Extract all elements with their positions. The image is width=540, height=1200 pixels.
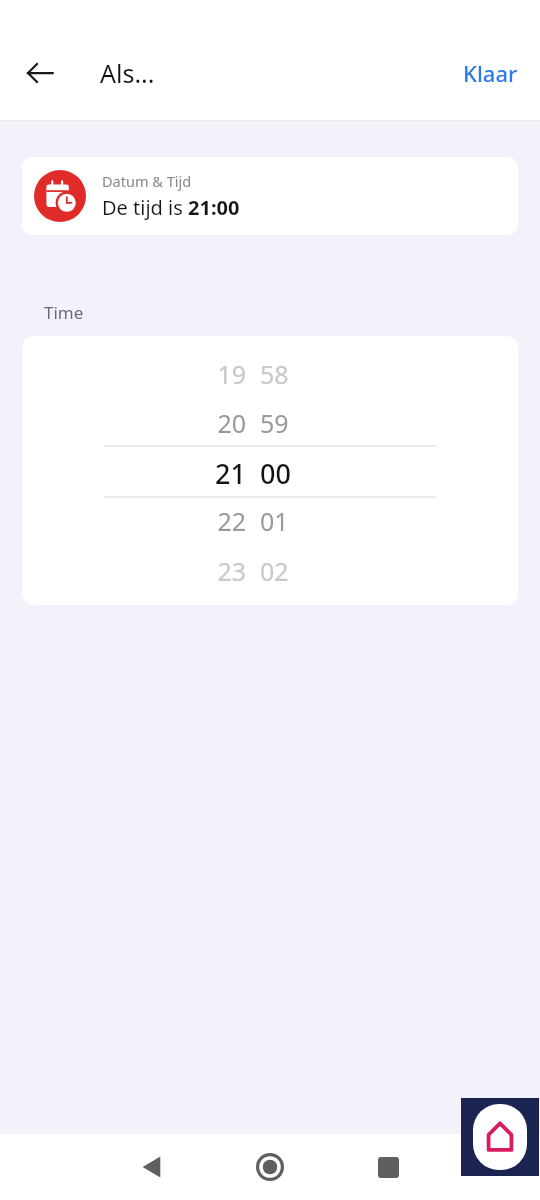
button[interactable]: Home: [240, 1137, 300, 1197]
button[interactable]: 19: [22, 357, 518, 391]
button[interactable]: Datum & Tijd: [22, 157, 518, 235]
staticText: 19: [217, 357, 246, 391]
button[interactable]: Recent apps: [358, 1137, 418, 1197]
staticText: 58: [260, 357, 289, 391]
button[interactable]: 20: [22, 406, 518, 440]
staticText: 59: [260, 406, 289, 440]
button[interactable]: Home Assistant: [461, 1098, 539, 1176]
staticText: 21: [215, 455, 246, 489]
staticText: 01: [260, 504, 289, 538]
button[interactable]: Back: [122, 1137, 182, 1197]
staticText: Datum & Tijd: [102, 171, 192, 191]
button[interactable]: Back: [14, 47, 66, 99]
staticText: 22: [217, 504, 246, 538]
button[interactable]: 22: [22, 504, 518, 538]
button[interactable]: Klaar: [455, 52, 526, 94]
staticText: Time: [44, 301, 84, 324]
staticText: Als...: [100, 56, 155, 90]
staticText: De tijd is 21:00: [102, 194, 240, 221]
staticText: 23: [217, 554, 246, 588]
button[interactable]: 21: [22, 455, 518, 489]
staticText: Klaar: [463, 58, 518, 88]
button[interactable]: 23: [22, 554, 518, 588]
staticText: 20: [217, 406, 246, 440]
staticText: 00: [260, 455, 291, 489]
staticText: 02: [260, 554, 289, 588]
